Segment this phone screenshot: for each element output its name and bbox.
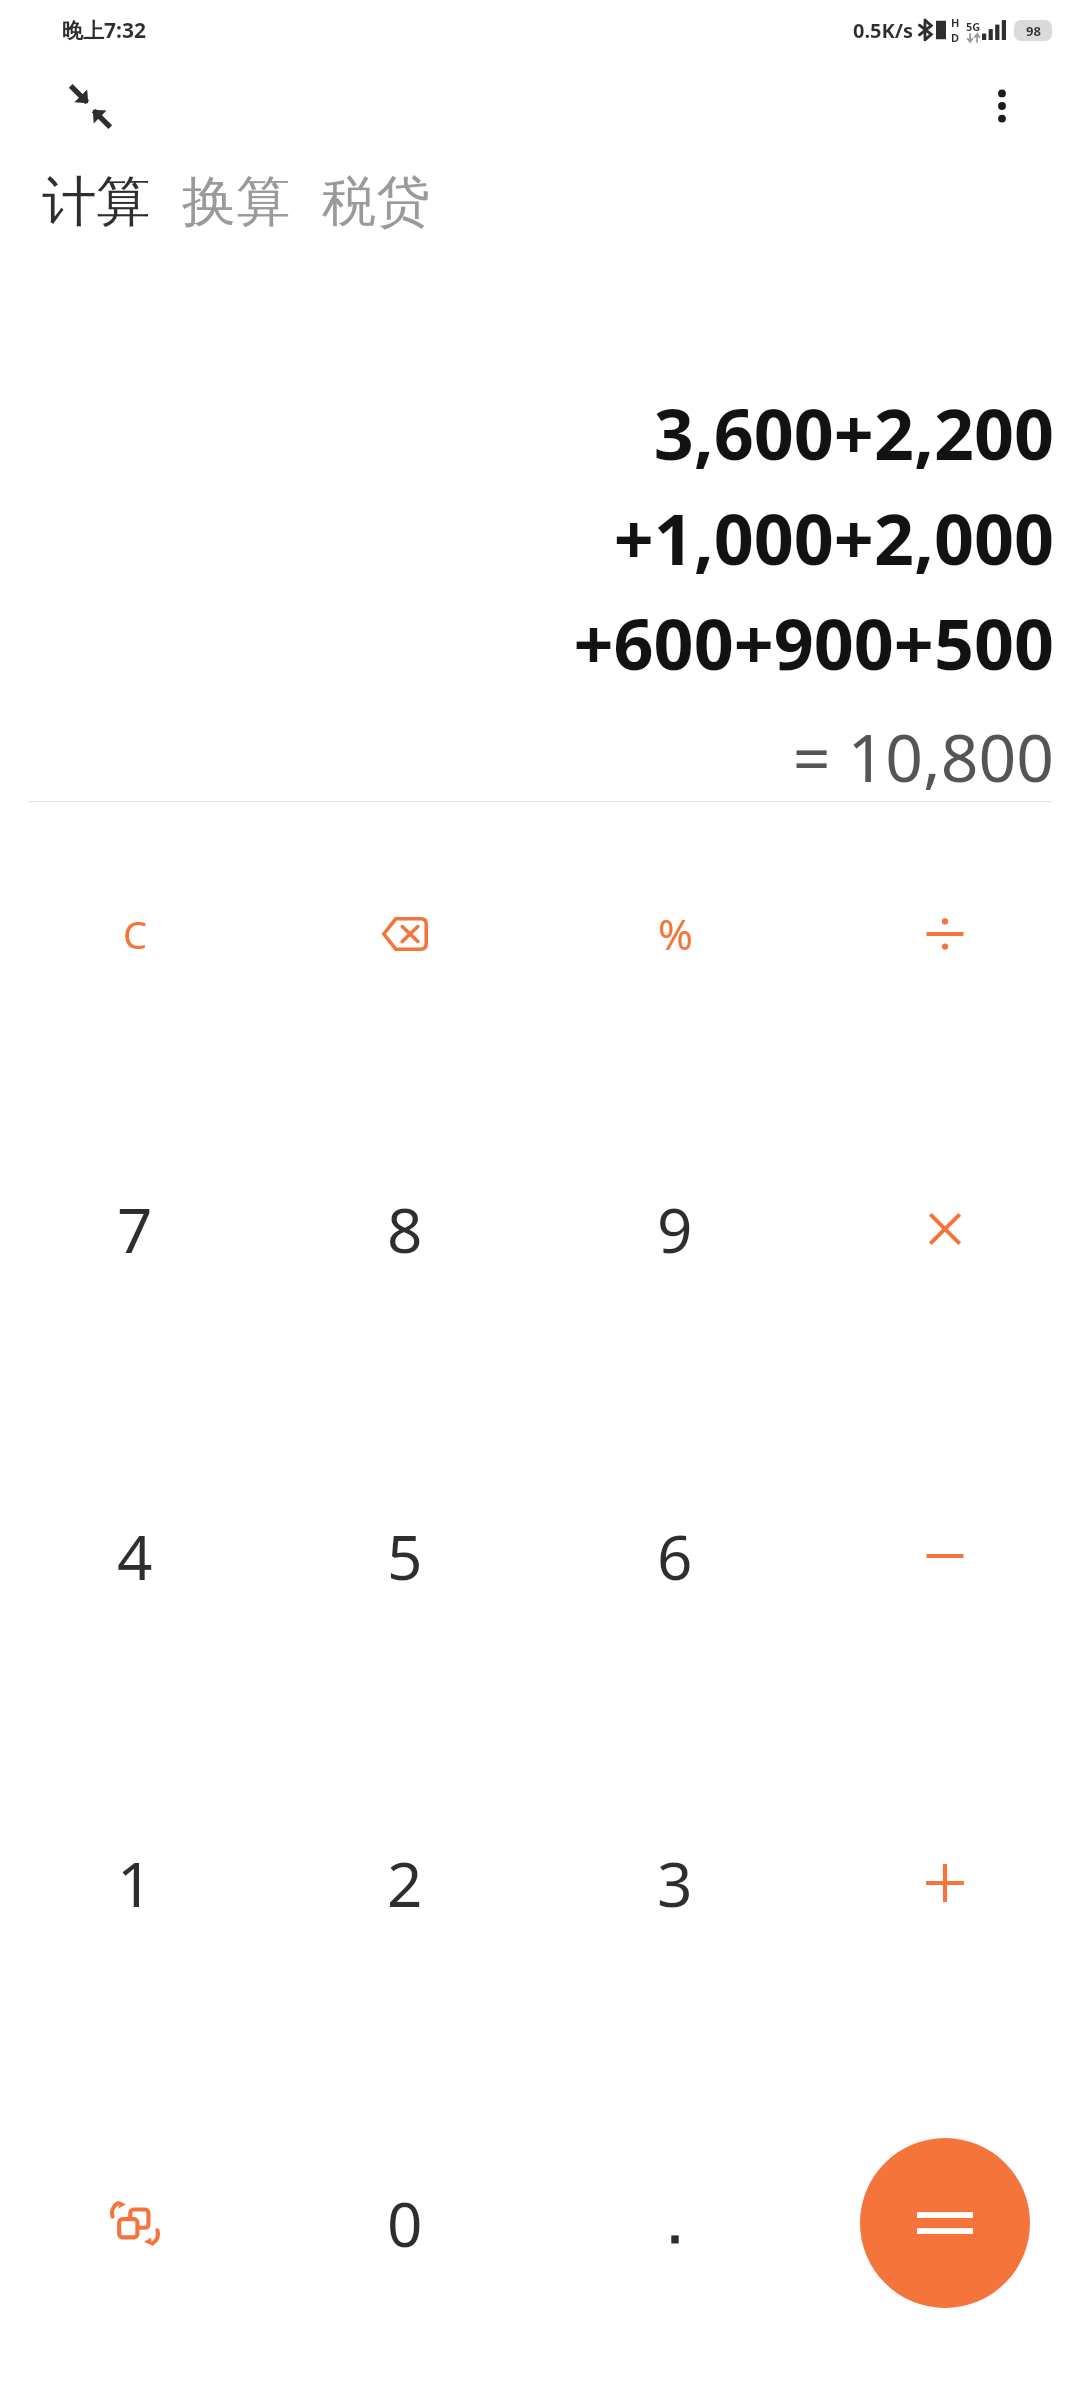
button[interactable]: Plus bbox=[810, 1719, 1080, 2046]
button[interactable]: 1 bbox=[0, 1719, 270, 2046]
staticText: 计算 bbox=[42, 168, 150, 236]
button[interactable]: 7 bbox=[0, 1065, 270, 1392]
button[interactable]: % bbox=[540, 802, 810, 1065]
staticText: 7 bbox=[117, 1187, 153, 1271]
button[interactable] bbox=[540, 2046, 810, 2400]
staticText: C bbox=[123, 908, 148, 960]
button[interactable]: Backspace bbox=[270, 802, 540, 1065]
button[interactable]: 4 bbox=[0, 1392, 270, 1719]
button[interactable]: 计算 bbox=[38, 164, 154, 240]
button[interactable]: 3 bbox=[540, 1719, 810, 2046]
button[interactable]: Convert bbox=[0, 2046, 270, 2400]
button[interactable]: More options bbox=[964, 68, 1040, 144]
staticText: 2 bbox=[387, 1841, 423, 1925]
button[interactable]: 2 bbox=[270, 1719, 540, 2046]
staticText: D bbox=[951, 30, 960, 45]
button[interactable]: 5 bbox=[270, 1392, 540, 1719]
staticText: 5 bbox=[387, 1514, 423, 1598]
staticText: 1 bbox=[117, 1841, 153, 1925]
staticText: +600+900+500 bbox=[573, 595, 1054, 690]
staticText: +1,000+2,000 bbox=[613, 490, 1054, 585]
button[interactable]: C bbox=[0, 802, 270, 1065]
staticText: H bbox=[951, 15, 960, 30]
staticText: 0 bbox=[387, 2181, 423, 2265]
button[interactable]: 税贷 bbox=[318, 164, 434, 240]
staticText: 0.5K/s bbox=[853, 17, 914, 44]
button[interactable]: Multiply bbox=[810, 1065, 1080, 1392]
button[interactable]: 9 bbox=[540, 1065, 810, 1392]
staticText: 8 bbox=[387, 1187, 423, 1271]
staticText: 6 bbox=[657, 1514, 693, 1598]
staticText: 5G bbox=[966, 19, 981, 34]
staticText: = 10,800 bbox=[792, 711, 1054, 801]
staticText: 4 bbox=[117, 1514, 153, 1598]
staticText: % bbox=[658, 905, 693, 962]
staticText: 税贷 bbox=[322, 168, 430, 236]
button[interactable]: 6 bbox=[540, 1392, 810, 1719]
button[interactable]: Divide bbox=[810, 802, 1080, 1065]
staticText: 换算 bbox=[182, 168, 290, 236]
staticText: 3,600+2,200 bbox=[653, 385, 1054, 480]
button[interactable]: 0 bbox=[270, 2046, 540, 2400]
staticText: 晚上7:32 bbox=[62, 16, 146, 45]
button[interactable]: 8 bbox=[270, 1065, 540, 1392]
button[interactable]: Minus bbox=[810, 1392, 1080, 1719]
button[interactable]: Collapse bbox=[52, 68, 128, 144]
button[interactable]: Equals bbox=[810, 2046, 1080, 2400]
button[interactable]: 换算 bbox=[178, 164, 294, 240]
staticText: 98 bbox=[1026, 22, 1041, 40]
staticText: 9 bbox=[657, 1187, 693, 1271]
staticText: 3 bbox=[657, 1841, 693, 1925]
